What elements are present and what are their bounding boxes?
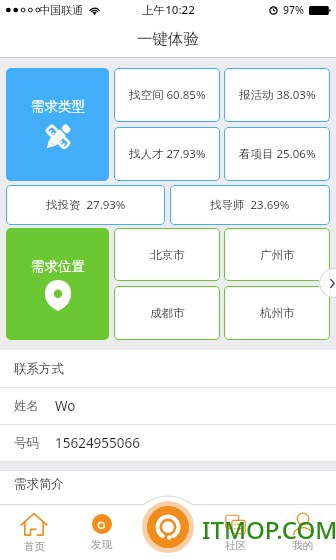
button[interactable]: 首页 xyxy=(0,505,68,560)
button[interactable]: 广州市 xyxy=(224,228,330,281)
staticText: 找投资 27.93% xyxy=(46,197,126,213)
staticText: 杭州市 xyxy=(260,306,295,320)
staticText: 找人才 27.93% xyxy=(129,146,206,162)
button[interactable]: 社区 xyxy=(202,505,269,560)
button[interactable]: 发布 xyxy=(142,501,194,553)
button[interactable]: 报活动 38.03% xyxy=(224,68,330,122)
staticText: 广州市 xyxy=(260,248,295,262)
button[interactable]: 杭州市 xyxy=(224,286,330,340)
button[interactable]: 找导师 23.69% xyxy=(170,185,330,225)
button[interactable]: 看项目 25.06% xyxy=(224,127,330,181)
staticText: ITMOP.COM xyxy=(202,513,336,546)
staticText: 首页 xyxy=(24,540,45,553)
staticText: 报活动 38.03% xyxy=(239,87,316,103)
button[interactable]: 北京市 xyxy=(114,228,220,281)
button[interactable]: 更多 xyxy=(319,268,336,298)
staticText: 需求类型 xyxy=(31,98,85,115)
staticText: 上午10:22 xyxy=(142,2,195,18)
staticText: 北京市 xyxy=(150,248,185,262)
button[interactable]: 姓名 xyxy=(0,388,336,424)
staticText: 需求位置 xyxy=(31,258,85,275)
staticText: 找空间 60.85% xyxy=(129,87,206,103)
staticText: Wo xyxy=(55,397,76,415)
staticText: 姓名 xyxy=(14,398,39,414)
staticText: 15624955066 xyxy=(55,434,140,452)
staticText: 找导师 23.69% xyxy=(210,197,290,213)
button[interactable]: 成都市 xyxy=(114,286,220,340)
staticText: 需求简介 xyxy=(14,476,64,492)
button[interactable]: 需求类型 xyxy=(6,68,109,181)
button[interactable]: 找投资 27.93% xyxy=(6,185,165,225)
staticText: 我的 xyxy=(292,539,313,552)
staticText: 看项目 25.06% xyxy=(239,146,316,162)
staticText: 发现 xyxy=(91,538,112,551)
staticText: 97% xyxy=(283,3,304,17)
staticText: 号码 xyxy=(14,435,39,451)
button[interactable]: 找人才 27.93% xyxy=(114,127,220,181)
staticText: 成都市 xyxy=(150,306,185,320)
button[interactable]: 找空间 60.85% xyxy=(114,68,220,122)
staticText: 中国联通 xyxy=(39,3,83,17)
button[interactable]: 号码 xyxy=(0,425,336,461)
staticText: 一键体验 xyxy=(137,29,199,49)
staticText: 联系方式 xyxy=(14,361,64,377)
staticText: 社区 xyxy=(225,539,246,552)
button[interactable]: 发现 xyxy=(68,505,135,560)
button[interactable]: 需求位置 xyxy=(6,228,109,340)
button[interactable]: 我的 xyxy=(269,505,336,560)
